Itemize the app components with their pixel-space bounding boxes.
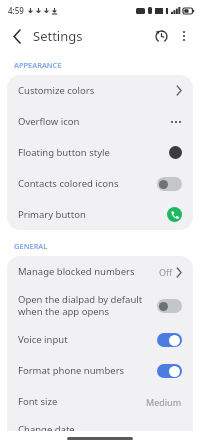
button[interactable]: Customize colors [7,75,193,106]
staticText: GENERAL [14,241,48,251]
button[interactable]: Format phone numbers [7,355,193,386]
staticText: Customize colors [18,84,170,97]
staticText: Change date and time format [18,423,95,431]
button[interactable]: Restore defaults [149,24,173,48]
staticText: APPEARANCE [14,60,62,70]
staticText: 4:59 [8,5,24,16]
staticText: Open the dialpad by default when the app… [18,293,151,318]
button[interactable]: Font size [7,386,193,417]
button[interactable]: Open the dialpad by default when the app… [7,287,193,324]
staticText: Medium [146,396,182,408]
button[interactable]: Manage blocked numbers [7,256,193,287]
staticText: Font size [18,395,140,408]
staticText: Overflow icon [18,115,163,128]
staticText: Format phone numbers [18,364,151,377]
staticText: Contacts colored icons [18,177,151,190]
button[interactable]: Floating button style [7,137,193,168]
staticText: Primary button [18,208,161,221]
staticText: Off [159,266,173,278]
staticText: Voice input [18,333,151,346]
button[interactable]: Change date and time format [7,417,193,431]
button[interactable]: Voice input [7,324,193,355]
staticText: Manage blocked numbers [18,265,153,278]
button[interactable]: Contacts colored icons [7,168,193,199]
button[interactable]: Primary button [7,199,193,230]
button[interactable]: Back [4,23,30,49]
button[interactable]: Overflow icon [7,106,193,137]
button[interactable]: More options [173,25,195,47]
staticText: Floating button style [18,146,163,159]
staticText: Settings [33,27,83,45]
